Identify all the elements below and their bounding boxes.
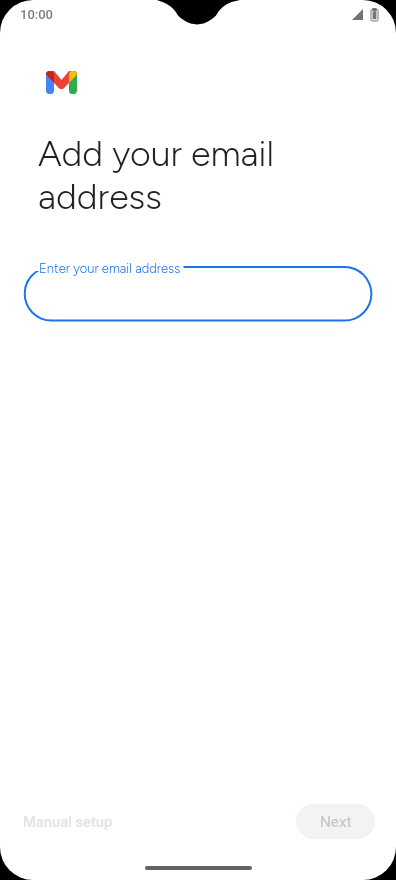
- staticText: Next: [320, 813, 352, 831]
- button[interactable]: Next: [296, 804, 375, 839]
- staticText: Manual setup: [23, 813, 113, 830]
- button[interactable]: Manual setup: [14, 805, 122, 838]
- staticText: Enter your email address: [39, 261, 181, 277]
- other: Gmail: [46, 71, 77, 94]
- staticText: 10:00: [20, 7, 54, 22]
- staticText: Add your email address: [38, 132, 274, 218]
